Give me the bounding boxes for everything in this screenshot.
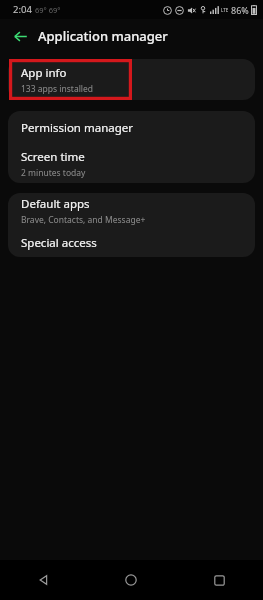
staticText: App info xyxy=(21,65,67,81)
staticText: 2:04 xyxy=(13,3,32,16)
button[interactable]: Recent apps xyxy=(175,560,263,600)
staticText: Special access xyxy=(21,235,97,251)
button[interactable]: Screen time xyxy=(8,144,255,183)
staticText: Permission manager xyxy=(21,120,134,136)
button[interactable]: Permission manager xyxy=(8,111,255,144)
button[interactable]: App info xyxy=(8,59,255,100)
staticText: Application manager xyxy=(38,27,168,45)
staticText: 133 apps installed xyxy=(21,83,94,95)
staticText: 69° 69° xyxy=(35,5,61,15)
button[interactable]: Home xyxy=(87,560,175,600)
staticText: Screen time xyxy=(21,149,85,165)
staticText: Default apps xyxy=(21,196,90,212)
button[interactable]: Special access xyxy=(8,229,255,257)
button[interactable]: Default apps xyxy=(8,193,255,229)
staticText: LTE xyxy=(221,7,229,13)
button[interactable]: Back xyxy=(0,560,87,600)
staticText: 2 minutes today xyxy=(21,167,86,179)
button[interactable]: Back xyxy=(6,22,34,50)
staticText: 86% xyxy=(231,4,249,16)
staticText: Brave, Contacts, and Message+ xyxy=(21,214,146,226)
